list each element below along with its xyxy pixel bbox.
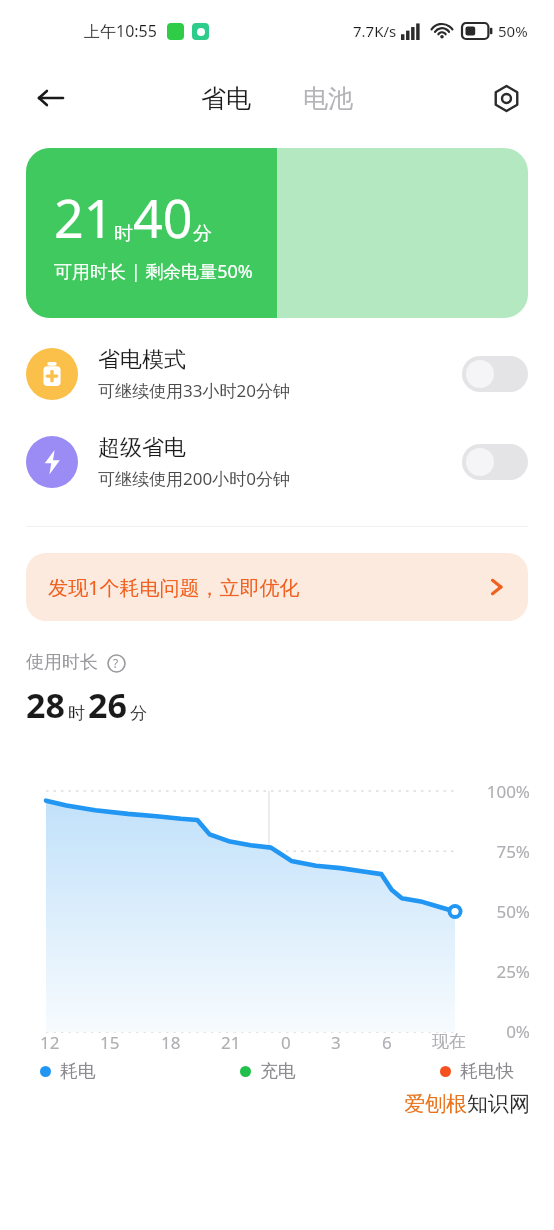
- staticText: 12: [40, 1031, 60, 1054]
- button[interactable]: Battery saver mode toggle: [462, 356, 528, 392]
- staticText: 7.7K/s: [353, 21, 397, 41]
- staticText: 爱刨根: [404, 1091, 467, 1117]
- staticText: 40: [133, 182, 193, 253]
- staticText: 21: [54, 182, 114, 253]
- staticText: 28: [26, 682, 65, 728]
- button[interactable]: 发现1个耗电问题，立即优化: [26, 553, 528, 621]
- staticText: 充电: [260, 1060, 296, 1083]
- staticText: 15: [100, 1031, 120, 1054]
- staticText: 时: [114, 222, 133, 246]
- button[interactable]: Ultra battery saver toggle: [462, 444, 528, 480]
- staticText: 6: [382, 1031, 392, 1054]
- staticText: 26: [88, 682, 127, 728]
- button[interactable]: Back: [26, 74, 74, 122]
- staticText: 耗电快: [460, 1060, 514, 1083]
- button[interactable]: Help: [106, 653, 126, 673]
- staticText: 时: [68, 703, 85, 724]
- staticText: 可继续使用33小时20分钟: [98, 379, 290, 402]
- staticText: 3: [331, 1031, 341, 1054]
- staticText: 上午10:55: [84, 20, 157, 42]
- staticText: 知识网: [467, 1091, 530, 1117]
- staticText: 18: [161, 1031, 181, 1054]
- button[interactable]: 电池: [293, 77, 363, 120]
- button[interactable]: 省电模式: [0, 342, 554, 406]
- staticText: 0: [281, 1031, 291, 1054]
- staticText: 50%: [498, 21, 528, 41]
- staticText: 50%: [474, 900, 530, 923]
- staticText: 使用时长: [26, 651, 98, 674]
- button[interactable]: 超级省电: [0, 430, 554, 494]
- staticText: 可用时长 | 剩余电量50%: [54, 259, 253, 284]
- staticText: 0%: [474, 1020, 530, 1043]
- staticText: 21: [221, 1031, 241, 1054]
- staticText: 电池: [303, 83, 353, 114]
- button[interactable]: Settings: [482, 74, 530, 122]
- staticText: 可继续使用200小时0分钟: [98, 467, 290, 490]
- staticText: 省电: [201, 83, 251, 114]
- staticText: 25%: [474, 960, 530, 983]
- staticText: 分: [193, 222, 212, 246]
- staticText: 发现1个耗电问题，立即优化: [48, 574, 488, 601]
- staticText: ?: [113, 655, 119, 671]
- staticText: 75%: [474, 840, 530, 863]
- staticText: 超级省电: [98, 434, 186, 462]
- button[interactable]: 21: [26, 148, 528, 318]
- staticText: 分: [130, 703, 147, 724]
- button[interactable]: 省电: [191, 77, 261, 120]
- staticText: 省电模式: [98, 346, 186, 374]
- staticText: 现在: [432, 1031, 466, 1052]
- staticText: 耗电: [60, 1060, 96, 1083]
- staticText: 100%: [474, 780, 530, 803]
